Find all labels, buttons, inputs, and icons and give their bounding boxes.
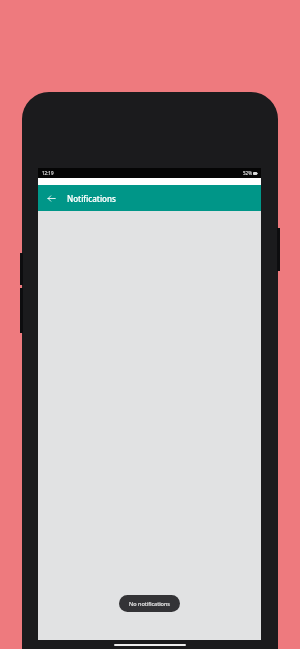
staticText: 52% bbox=[243, 170, 252, 176]
button[interactable]: Back bbox=[43, 190, 60, 207]
staticText: Notifications bbox=[67, 193, 116, 204]
button[interactable]: No notifications bbox=[119, 595, 180, 612]
staticText: 12:19 bbox=[42, 170, 54, 176]
staticText: No notifications bbox=[129, 600, 170, 607]
